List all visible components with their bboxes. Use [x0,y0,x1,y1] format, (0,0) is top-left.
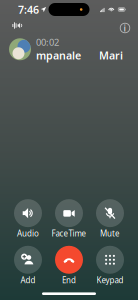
staticText: i [123,22,126,34]
button[interactable]: FaceTime [49,199,89,239]
staticText: 00:02 [36,36,59,48]
staticText: Audio [17,228,39,239]
button[interactable]: Keypad [90,246,130,285]
staticText: FaceTime [51,228,86,239]
button[interactable]: Mute [90,199,130,239]
staticText: mpanale Mari [36,48,123,63]
staticText: End [62,275,76,285]
button[interactable]: Add [8,246,48,285]
button[interactable]: End [49,246,89,285]
staticText: Mute [100,228,120,239]
staticText: Add [20,275,35,285]
staticText: Keypad [96,275,123,285]
button[interactable]: Audio [8,199,48,239]
button[interactable]: Call info [118,21,132,35]
staticText: 7:46 [18,2,39,17]
